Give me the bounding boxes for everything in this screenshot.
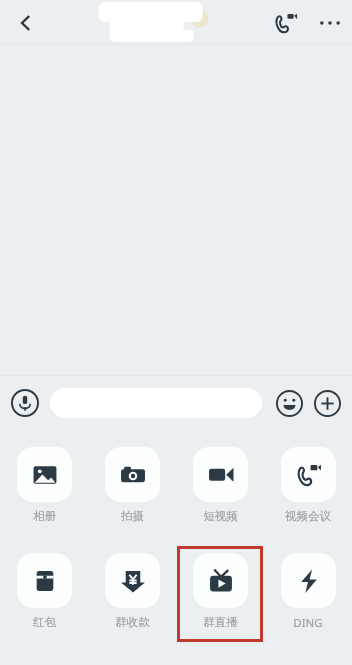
staticText: 群直播 xyxy=(203,615,238,629)
button[interactable]: Back xyxy=(0,0,52,45)
staticText: 拍摄 xyxy=(121,509,144,523)
staticText: DING xyxy=(293,615,323,631)
button[interactable]: 拍摄 xyxy=(88,440,176,536)
button[interactable]: 相册 xyxy=(0,440,88,536)
button[interactable]: Emoji xyxy=(274,388,304,418)
staticText: 群收款 xyxy=(115,615,150,629)
button[interactable]: 短视频 xyxy=(176,440,264,536)
staticText: 相册 xyxy=(33,509,56,523)
button[interactable]: 视频会议 xyxy=(264,440,352,536)
button[interactable]: 群收款 xyxy=(88,546,176,642)
button[interactable]: Video call xyxy=(264,0,308,45)
button[interactable]: DING xyxy=(264,546,352,642)
button[interactable]: 红包 xyxy=(0,546,88,642)
button[interactable] xyxy=(50,388,262,418)
button[interactable]: More actions xyxy=(312,388,342,418)
staticText: 短视频 xyxy=(203,509,238,523)
button[interactable]: 群直播 xyxy=(176,546,264,642)
button[interactable]: Voice message xyxy=(10,388,40,418)
staticText: 红包 xyxy=(33,615,56,629)
staticText: 视频会议 xyxy=(285,509,331,523)
button[interactable]: More options xyxy=(308,0,352,45)
